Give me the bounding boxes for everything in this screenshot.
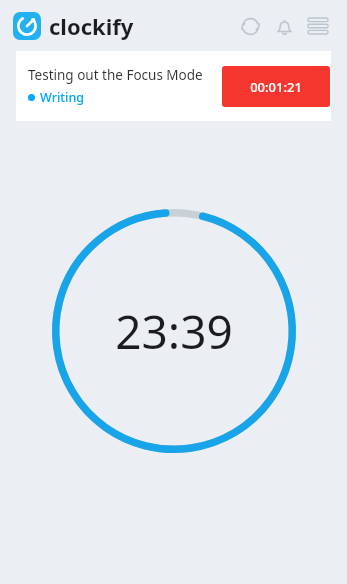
staticText: Testing out the Focus Mode <box>28 66 203 84</box>
button[interactable]: Sync <box>233 9 267 43</box>
staticText: Writing <box>40 89 85 106</box>
button[interactable]: 00:01:21 <box>222 66 330 107</box>
staticText: 23:39 <box>115 300 233 363</box>
staticText: 00:01:21 <box>250 78 302 96</box>
button[interactable]: Testing out the Focus Mode <box>16 51 331 121</box>
staticText: clockify <box>49 11 134 41</box>
button[interactable]: 23:39 <box>52 209 296 453</box>
button[interactable]: clockify <box>13 11 134 41</box>
button[interactable]: Menu <box>301 9 335 43</box>
button[interactable]: Notifications <box>267 9 301 43</box>
